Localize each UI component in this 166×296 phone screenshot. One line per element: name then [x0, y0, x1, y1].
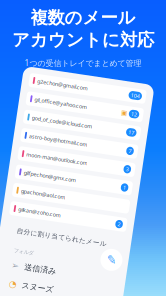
button[interactable]: g2echon@gmail.com — [9, 80, 127, 94]
staticText: 1 — [118, 176, 121, 183]
staticText: ✎ — [112, 246, 122, 260]
button[interactable]: gil_office@yahoo.com — [9, 98, 127, 112]
staticText: god_of_code@icloud.com — [17, 120, 78, 128]
staticText: 3 — [118, 157, 121, 165]
staticText: ◔ — [19, 286, 27, 296]
button[interactable]: ➢ — [9, 266, 134, 280]
button[interactable]: gilkan@zoho.com — [9, 209, 127, 223]
staticText: moon-man@outlook.com — [17, 157, 79, 165]
button[interactable]: god_of_code@icloud.com — [9, 117, 127, 131]
staticText: 1つの受信トレイでまとめて管理 — [24, 58, 141, 68]
staticText: 17 — [115, 120, 121, 128]
button[interactable]: Compose — [106, 242, 128, 264]
staticText: アカウントに対応 — [12, 29, 154, 51]
staticText: ➢ — [19, 267, 27, 278]
staticText: スヌーズ — [32, 286, 64, 296]
button[interactable]: gpachon@aol.com — [9, 191, 127, 205]
staticText: g2echon@gmail.com — [17, 83, 68, 91]
staticText: ▣ — [105, 102, 111, 109]
staticText: 自分に割り当てられたメール — [19, 234, 110, 242]
staticText: 104 — [112, 83, 121, 91]
staticText: 送信済み — [32, 268, 64, 278]
staticText: gil_office@yahoo.com — [17, 102, 70, 109]
staticText: astro-boy@hotmail.com — [17, 139, 76, 146]
button[interactable]: ◔ — [9, 284, 134, 296]
staticText: gilfpechon@gmx.com — [17, 176, 70, 183]
button[interactable]: moon-man@outlook.com — [9, 154, 127, 168]
staticText: 2 — [118, 213, 121, 220]
button[interactable]: gilfpechon@gmx.com — [9, 172, 127, 186]
staticText: 12 — [115, 102, 121, 109]
button[interactable]: astro-boy@hotmail.com — [9, 135, 127, 149]
staticText: 複数のメール — [30, 7, 135, 28]
staticText: 7 — [118, 139, 121, 146]
staticText: gpachon@aol.com — [17, 194, 62, 202]
staticText: gilkan@zoho.com — [17, 213, 60, 220]
